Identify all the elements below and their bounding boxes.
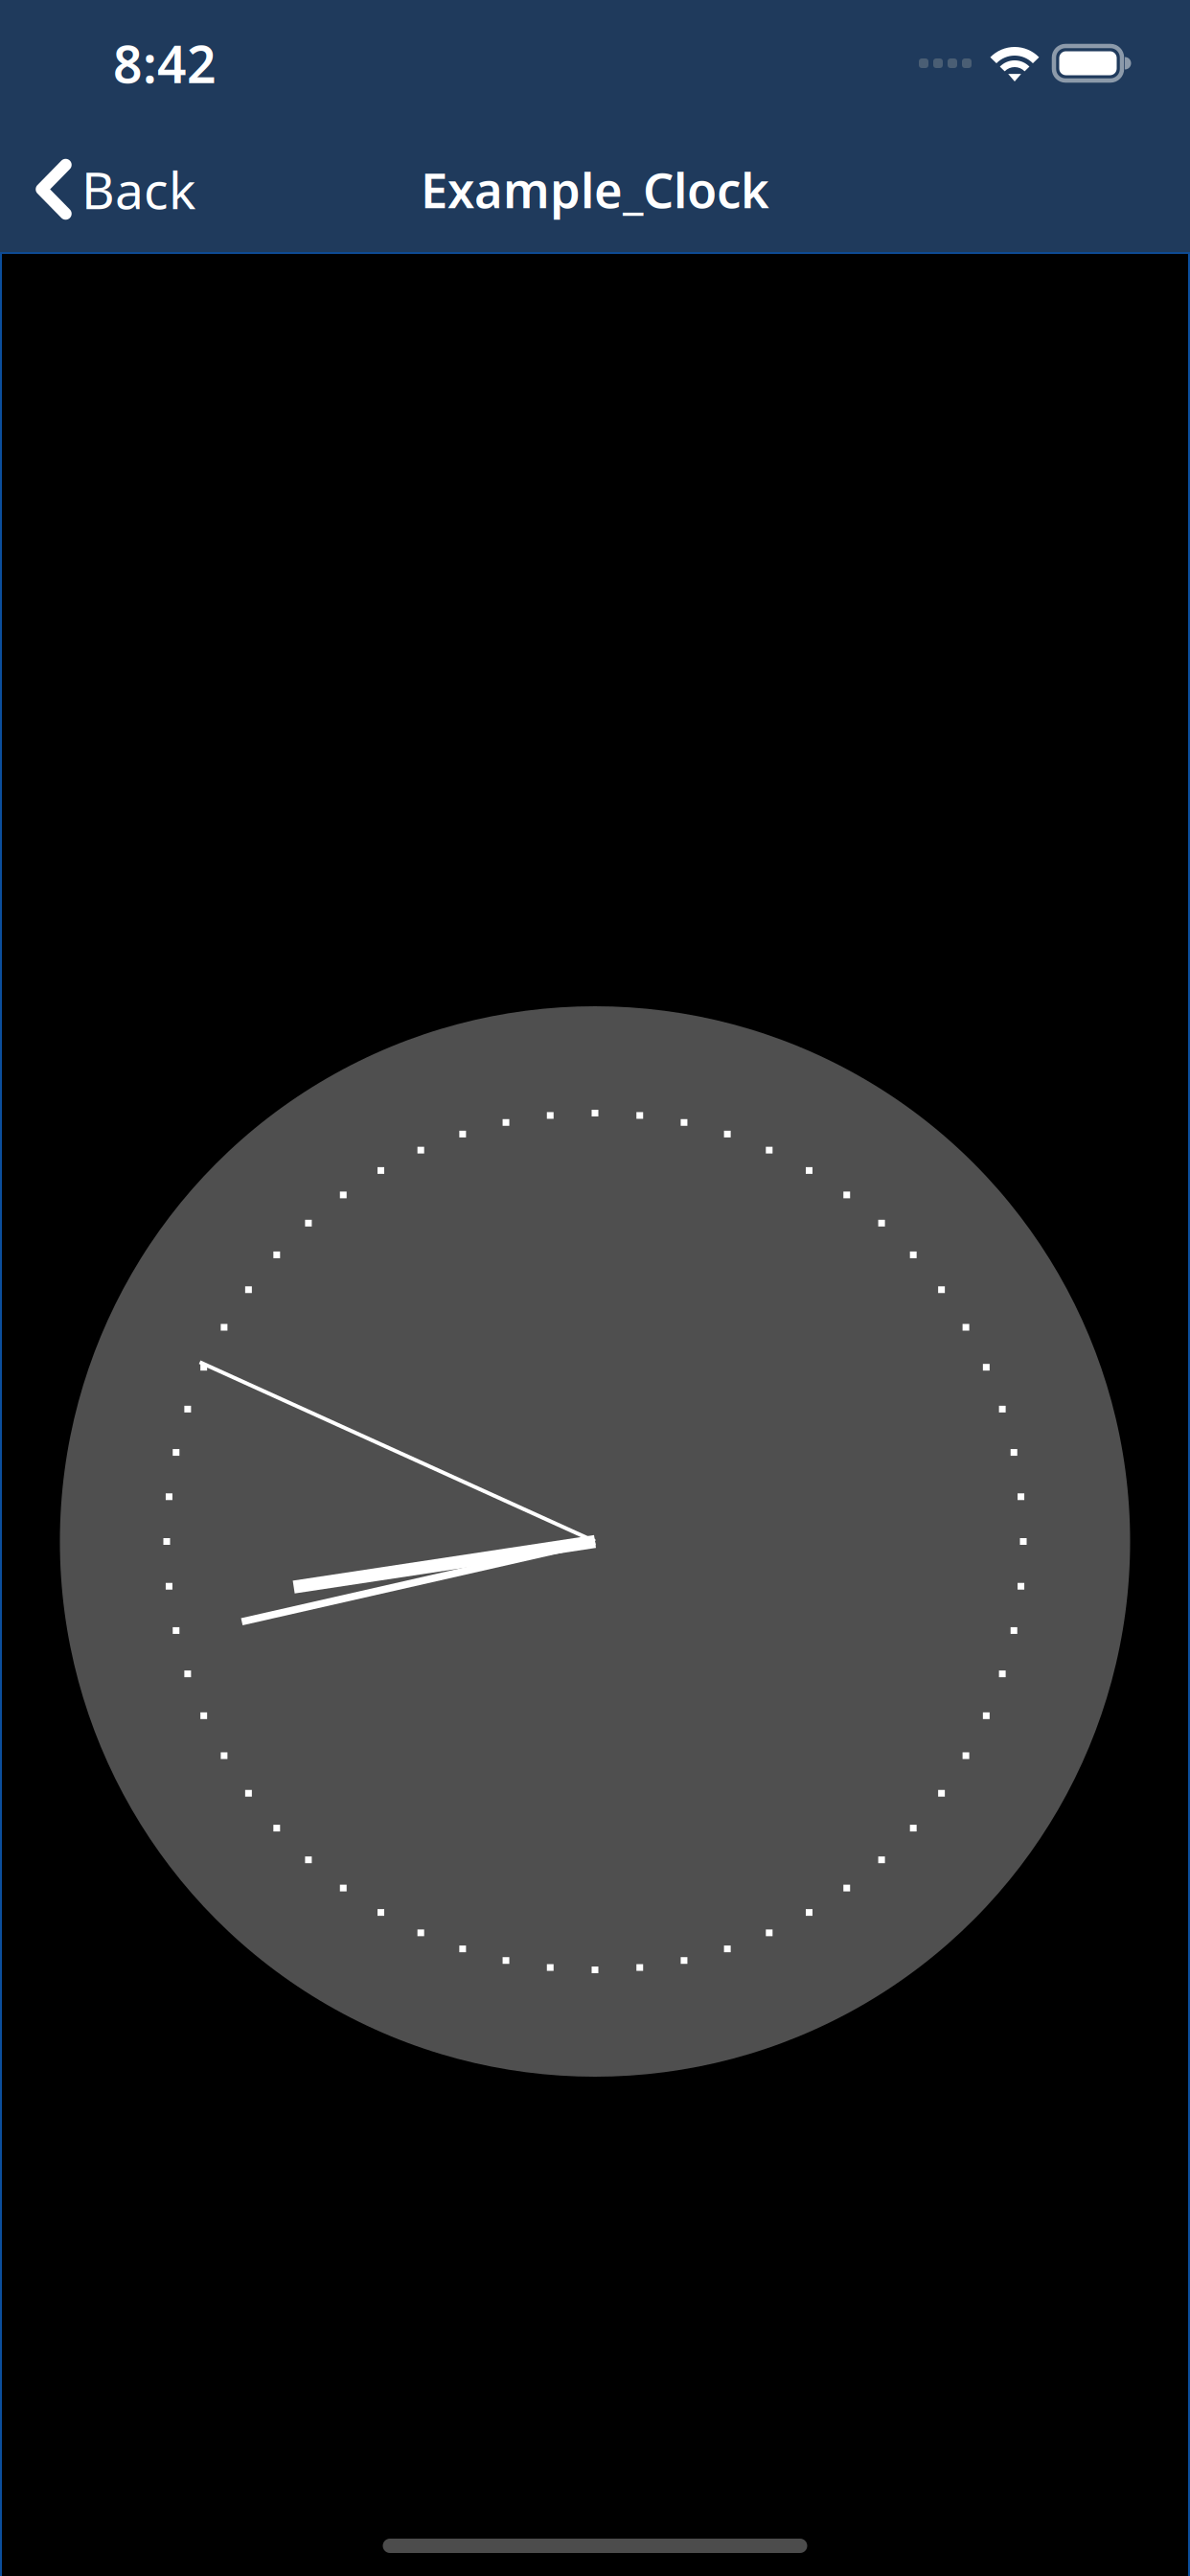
staticText: 8:42: [113, 29, 217, 97]
staticText: Back: [81, 155, 195, 223]
button[interactable]: Back: [0, 126, 218, 252]
staticText: Example_Clock: [421, 157, 769, 222]
